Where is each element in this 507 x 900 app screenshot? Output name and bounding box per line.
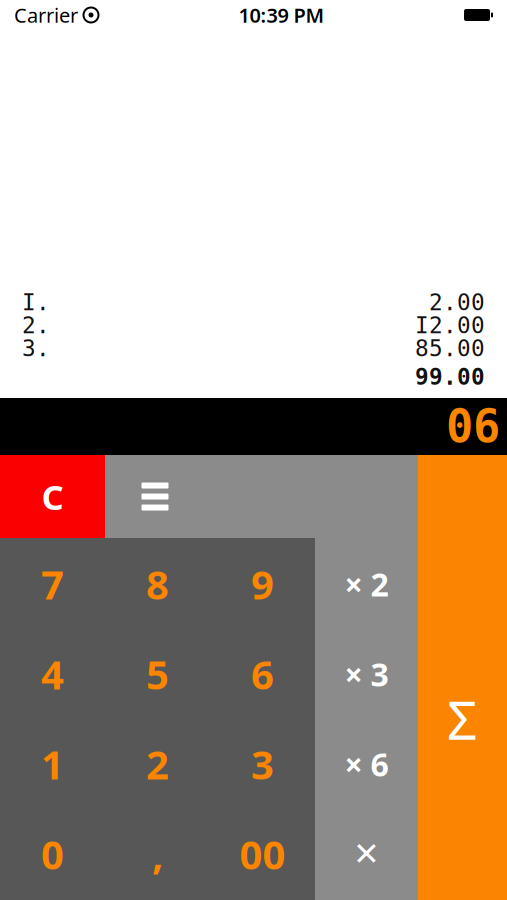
button[interactable]: × 3: [315, 629, 418, 719]
button[interactable]: 5: [105, 629, 210, 719]
staticText: Carrier: [14, 2, 78, 28]
staticText: 6: [251, 647, 274, 700]
staticText: 2.: [22, 313, 50, 338]
button[interactable]: ✕: [315, 809, 418, 899]
staticText: C: [41, 473, 63, 519]
staticText: I.: [22, 290, 50, 315]
staticText: 2: [146, 737, 169, 790]
staticText: 5: [146, 647, 169, 700]
button[interactable]: 4: [0, 629, 105, 719]
staticText: [78, 3, 83, 26]
staticText: 00: [239, 827, 285, 880]
staticText: ✕: [353, 836, 380, 872]
button[interactable]: 3: [210, 719, 315, 809]
staticText: 9: [251, 557, 274, 610]
button[interactable]: 9: [210, 539, 315, 629]
staticText: 2.00: [429, 290, 485, 315]
staticText: × 2: [344, 563, 388, 605]
staticText: 1: [41, 737, 64, 790]
staticText: 85.00: [415, 336, 485, 361]
button[interactable]: × 2: [315, 539, 418, 629]
button[interactable]: 00: [210, 809, 315, 899]
staticText: 4: [41, 647, 64, 700]
button[interactable]: Σ: [418, 538, 507, 900]
button[interactable]: Menu: [105, 455, 418, 538]
button[interactable]: 0: [0, 809, 105, 899]
staticText: 8: [146, 557, 169, 610]
staticText: 0: [41, 827, 64, 880]
staticText: ,: [152, 827, 163, 880]
button[interactable]: 8: [105, 539, 210, 629]
button[interactable]: × 6: [315, 719, 418, 809]
staticText: 7: [41, 557, 64, 610]
staticText: 3: [251, 737, 274, 790]
staticText: Σ: [447, 684, 478, 754]
button[interactable]: C: [0, 455, 105, 538]
staticText: I2.00: [415, 313, 485, 338]
staticText: 06: [446, 401, 500, 452]
staticText: 3.: [22, 336, 50, 361]
button[interactable]: 6: [210, 629, 315, 719]
button[interactable]: 1: [0, 719, 105, 809]
staticText: × 6: [344, 743, 388, 785]
staticText: × 3: [344, 653, 388, 695]
staticText: 10:39 PM: [238, 2, 324, 28]
button[interactable]: 2: [105, 719, 210, 809]
staticText: 99.00: [415, 364, 485, 390]
button[interactable]: 7: [0, 539, 105, 629]
button[interactable]: ,: [105, 809, 210, 899]
